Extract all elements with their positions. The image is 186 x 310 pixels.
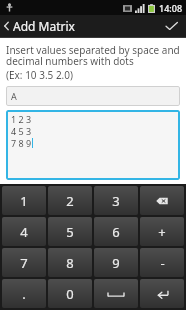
- staticText: .: [22, 285, 26, 303]
- staticText: 4 5 3: [11, 125, 32, 137]
- staticText: 7: [20, 254, 28, 272]
- button[interactable]: Done: [156, 15, 186, 37]
- button[interactable]: 4: [2, 217, 46, 246]
- button[interactable]: 1 2 3: [6, 110, 180, 180]
- button[interactable]: 3: [94, 186, 138, 215]
- staticText: 4: [20, 223, 28, 241]
- staticText: 5: [66, 223, 74, 241]
- button[interactable]: -: [140, 248, 184, 277]
- button[interactable]: 0: [48, 279, 92, 308]
- button[interactable]: +: [140, 217, 184, 246]
- staticText: 6: [112, 223, 120, 241]
- staticText: 3: [112, 192, 120, 210]
- button[interactable]: 8: [48, 248, 92, 277]
- staticText: A: [11, 90, 17, 102]
- staticText: 1: [20, 192, 28, 210]
- staticText: 14:08: [159, 2, 183, 14]
- button[interactable]: A: [6, 86, 180, 106]
- staticText: 8: [66, 254, 74, 272]
- button[interactable]: .: [2, 279, 46, 308]
- staticText: Insert values separated by space and dec…: [6, 43, 180, 68]
- button[interactable]: 2: [48, 186, 92, 215]
- staticText: 1 2 3: [11, 113, 32, 125]
- staticText: (Ex: 10 3.5 2.0): [6, 68, 74, 82]
- staticText: -: [160, 254, 165, 272]
- button[interactable]: 7: [2, 248, 46, 277]
- button[interactable]: Enter: [140, 279, 184, 308]
- staticText: Add Matrix: [13, 18, 75, 34]
- button[interactable]: 5: [48, 217, 92, 246]
- staticText: 7 8 9: [11, 137, 32, 149]
- staticText: 9: [112, 254, 120, 272]
- button[interactable]: Add Matrix: [0, 15, 81, 37]
- staticText: 0: [66, 285, 74, 303]
- button[interactable]: 9: [94, 248, 138, 277]
- staticText: +: [158, 223, 166, 241]
- button[interactable]: 1: [2, 186, 46, 215]
- staticText: 2: [66, 192, 74, 210]
- button[interactable]: Backspace: [140, 186, 184, 215]
- button[interactable]: 6: [94, 217, 138, 246]
- button[interactable]: Space: [94, 279, 138, 308]
